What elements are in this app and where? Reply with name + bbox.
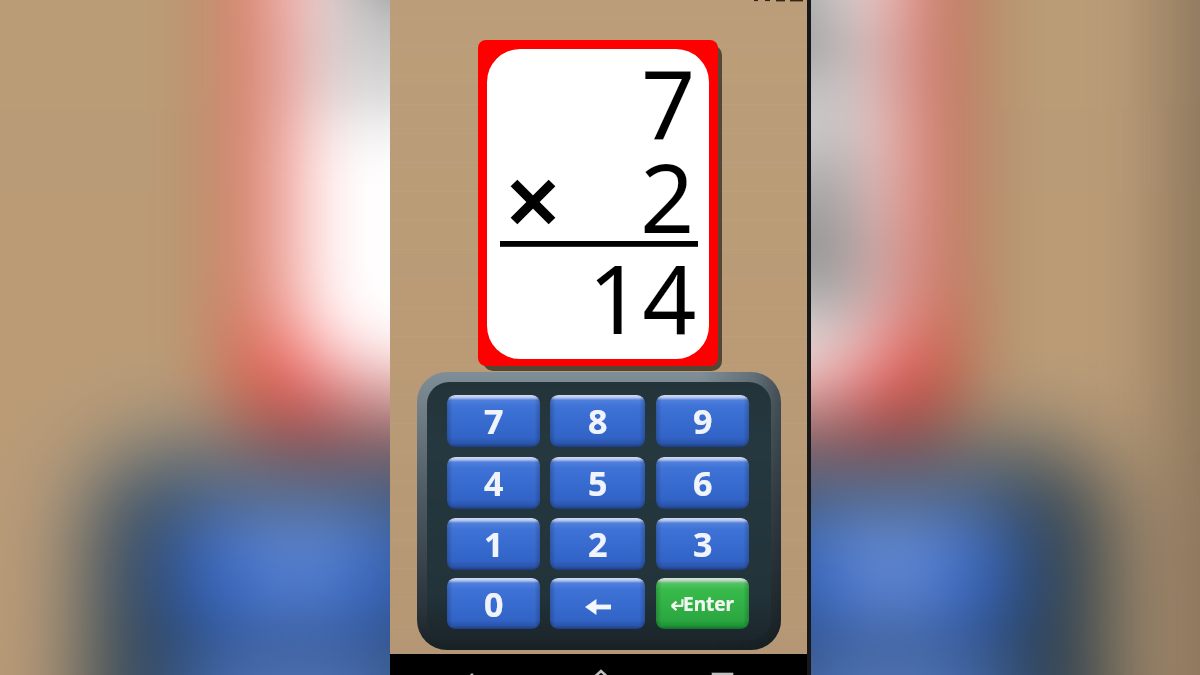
button[interactable]: Flash card: 7 times 2 equals 14 [478, 40, 727, 375]
staticText: 14 [588, 232, 697, 359]
button[interactable]: 1 [447, 518, 540, 570]
button[interactable]: Home [566, 654, 636, 675]
button[interactable]: 3 [656, 518, 749, 570]
button[interactable]: 0 [447, 578, 540, 629]
button[interactable]: 2 [550, 518, 645, 570]
button[interactable]: Backspace [550, 578, 645, 629]
staticText: 1 [484, 521, 504, 567]
staticText: 7 [641, 49, 696, 166]
staticText: 8 [564, 510, 621, 641]
staticText: 8 [588, 398, 608, 444]
staticText: 9 [693, 398, 713, 444]
button[interactable]: 6 [656, 457, 749, 509]
staticText: 3 [693, 521, 713, 567]
staticText: 2 [640, 131, 695, 260]
staticText: 2 [713, 0, 870, 117]
staticText: 2 [588, 521, 608, 567]
button[interactable]: 9 [656, 395, 749, 447]
staticText: Enter [683, 591, 735, 617]
staticText: 4 [484, 460, 504, 506]
button[interactable]: 5 [550, 457, 645, 509]
button[interactable]: Recents [691, 654, 753, 675]
button[interactable]: 8 [550, 395, 645, 447]
staticText: 9 [864, 510, 921, 641]
staticText: 0 [484, 581, 504, 627]
button[interactable]: Back [436, 654, 498, 675]
staticText: 5 [588, 460, 608, 506]
staticText: 14 [564, 37, 875, 399]
button[interactable]: Enter [656, 578, 749, 629]
button[interactable]: 4 [447, 457, 540, 509]
staticText: 7 [268, 510, 325, 641]
staticText: 7 [484, 398, 504, 444]
button[interactable]: 7 [447, 395, 540, 447]
staticText: 6 [693, 460, 713, 506]
